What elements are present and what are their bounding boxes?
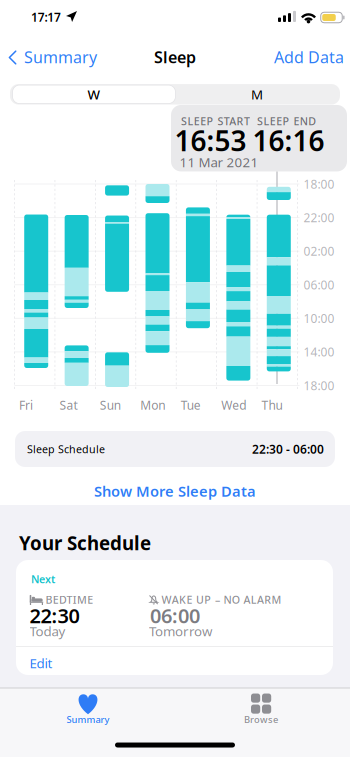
- staticText: 22:30 - 06:00: [252, 441, 324, 457]
- staticText: Your Schedule: [19, 531, 151, 555]
- button[interactable]: Edit: [29, 654, 89, 672]
- staticText: 17:17: [31, 9, 61, 25]
- staticText: Wed: [221, 397, 246, 413]
- staticText: Edit: [29, 654, 52, 672]
- button[interactable]: Browse: [206, 688, 316, 732]
- button[interactable]: Add Data: [144, 46, 344, 68]
- staticText: 10:00: [303, 310, 334, 326]
- staticText: Mon: [140, 397, 165, 413]
- staticText: 14:00: [303, 344, 334, 360]
- button[interactable]: M: [177, 85, 337, 103]
- staticText: SLEEP END: [257, 114, 316, 128]
- staticText: WAKE UP – NO ALARM: [161, 592, 282, 607]
- staticText: Add Data: [274, 46, 344, 68]
- staticText: 11 Mar 2021: [179, 153, 258, 171]
- staticText: Fri: [19, 397, 33, 413]
- button[interactable]: Show More Sleep Data: [94, 481, 256, 501]
- staticText: Sleep Schedule: [27, 442, 105, 456]
- staticText: Next: [31, 572, 55, 586]
- staticText: 18:00: [303, 176, 334, 192]
- staticText: M: [251, 85, 263, 103]
- staticText: 22:00: [303, 210, 334, 225]
- staticText: Today: [29, 622, 65, 640]
- staticText: 06:00: [303, 277, 334, 293]
- button[interactable]: Summary: [33, 688, 143, 732]
- staticText: Tomorrow: [149, 622, 212, 640]
- staticText: 16:53: [174, 122, 246, 159]
- staticText: Show More Sleep Data: [94, 481, 256, 501]
- staticText: Thu: [262, 397, 283, 413]
- staticText: Summary: [66, 713, 109, 726]
- button[interactable]: W: [12, 85, 175, 103]
- staticText: Browse: [244, 713, 278, 726]
- staticText: Sleep: [154, 46, 196, 68]
- staticText: 16:16: [252, 122, 324, 159]
- staticText: BEDTIME: [45, 592, 93, 607]
- staticText: Tue: [181, 397, 201, 413]
- staticText: 22:30: [29, 602, 79, 629]
- staticText: 06:00: [150, 602, 200, 629]
- staticText: Summary: [24, 46, 97, 68]
- button[interactable]: Sleep Schedule: [15, 431, 335, 467]
- button[interactable]: Summary: [5, 42, 95, 72]
- staticText: 18:00: [303, 377, 334, 393]
- staticText: 02:00: [303, 243, 334, 259]
- staticText: W: [87, 85, 100, 103]
- staticText: Sat: [59, 397, 77, 413]
- staticText: Sun: [100, 397, 121, 413]
- staticText: SLEEP START: [181, 114, 250, 128]
